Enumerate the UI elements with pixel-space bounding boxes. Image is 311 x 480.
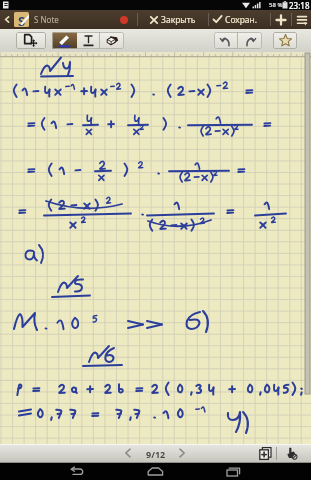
button[interactable]: Favorite: [273, 32, 297, 49]
button[interactable]: Закрыть: [146, 10, 200, 29]
button[interactable]: Text: [77, 32, 99, 49]
staticText: Закрыть: [161, 14, 196, 26]
button[interactable]: Recents: [223, 463, 245, 480]
button[interactable]: Next page: [173, 444, 191, 462]
staticText: S Note: [34, 14, 59, 25]
staticText: S: [18, 12, 26, 27]
button[interactable]: Eraser: [100, 32, 124, 49]
staticText: 23:18: [289, 0, 310, 10]
button[interactable]: Add page: [256, 444, 274, 463]
button[interactable]: Hand tool off: [282, 444, 300, 463]
button[interactable]: Redo: [238, 32, 262, 49]
staticText: 9/12: [146, 448, 166, 460]
button[interactable]: Undo: [214, 32, 237, 49]
staticText: 58 %: [269, 1, 283, 9]
button[interactable]: 9/12: [144, 444, 168, 463]
button[interactable]: Home: [144, 463, 166, 480]
button[interactable]: Сохран.: [210, 10, 261, 29]
button[interactable]: Record: [116, 10, 132, 29]
staticText: Сохран.: [225, 14, 258, 26]
button[interactable]: Insert: [16, 32, 46, 49]
button[interactable]: More options: [292, 10, 311, 29]
button[interactable]: Add: [271, 10, 291, 29]
button[interactable]: Back: [0, 10, 14, 29]
button[interactable]: Previous page: [119, 444, 137, 462]
button[interactable]: Back: [66, 463, 88, 480]
button[interactable]: Pen: [52, 32, 77, 49]
